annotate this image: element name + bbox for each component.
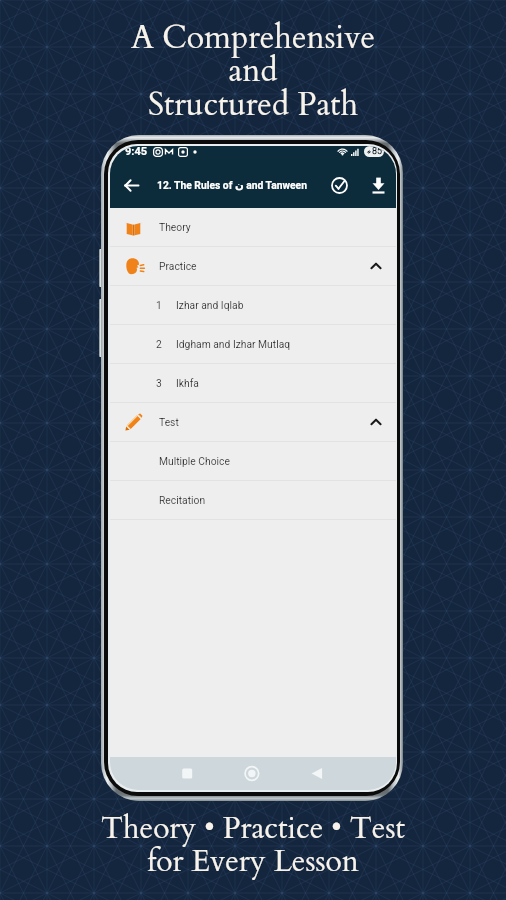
- button[interactable]: Mark as complete: [327, 173, 351, 197]
- staticText: 12. The Rules of ن and Tanween: [157, 179, 307, 191]
- button[interactable]: Practice: [110, 247, 396, 285]
- button[interactable]: Test: [110, 403, 396, 441]
- staticText: 85: [372, 146, 383, 157]
- staticText: A Comprehensive and Structured Path: [0, 16, 506, 127]
- staticText: Recitation: [159, 494, 206, 506]
- staticText: Theory: [159, 221, 191, 233]
- button[interactable]: 3: [110, 364, 396, 402]
- staticText: Ikhfa: [176, 377, 199, 389]
- staticText: Theory • Practice • Test for Every Lesso…: [0, 808, 506, 882]
- button[interactable]: Back: [119, 173, 143, 197]
- staticText: Practice: [159, 260, 197, 272]
- button[interactable]: 1: [110, 286, 396, 324]
- staticText: Test: [159, 416, 179, 428]
- staticText: 2: [156, 338, 162, 350]
- button[interactable]: Theory: [110, 208, 396, 246]
- button[interactable]: 2: [110, 325, 396, 363]
- button[interactable]: Multiple Choice: [110, 442, 396, 480]
- button[interactable]: Recitation: [110, 481, 396, 519]
- staticText: Idgham and Izhar Mutlaq: [176, 338, 291, 350]
- staticText: 9:45: [125, 146, 148, 158]
- staticText: 3: [156, 377, 162, 389]
- staticText: Izhar and Iqlab: [176, 299, 244, 311]
- staticText: 1: [156, 299, 162, 311]
- staticText: Multiple Choice: [159, 455, 230, 467]
- button[interactable]: Download: [366, 173, 390, 197]
